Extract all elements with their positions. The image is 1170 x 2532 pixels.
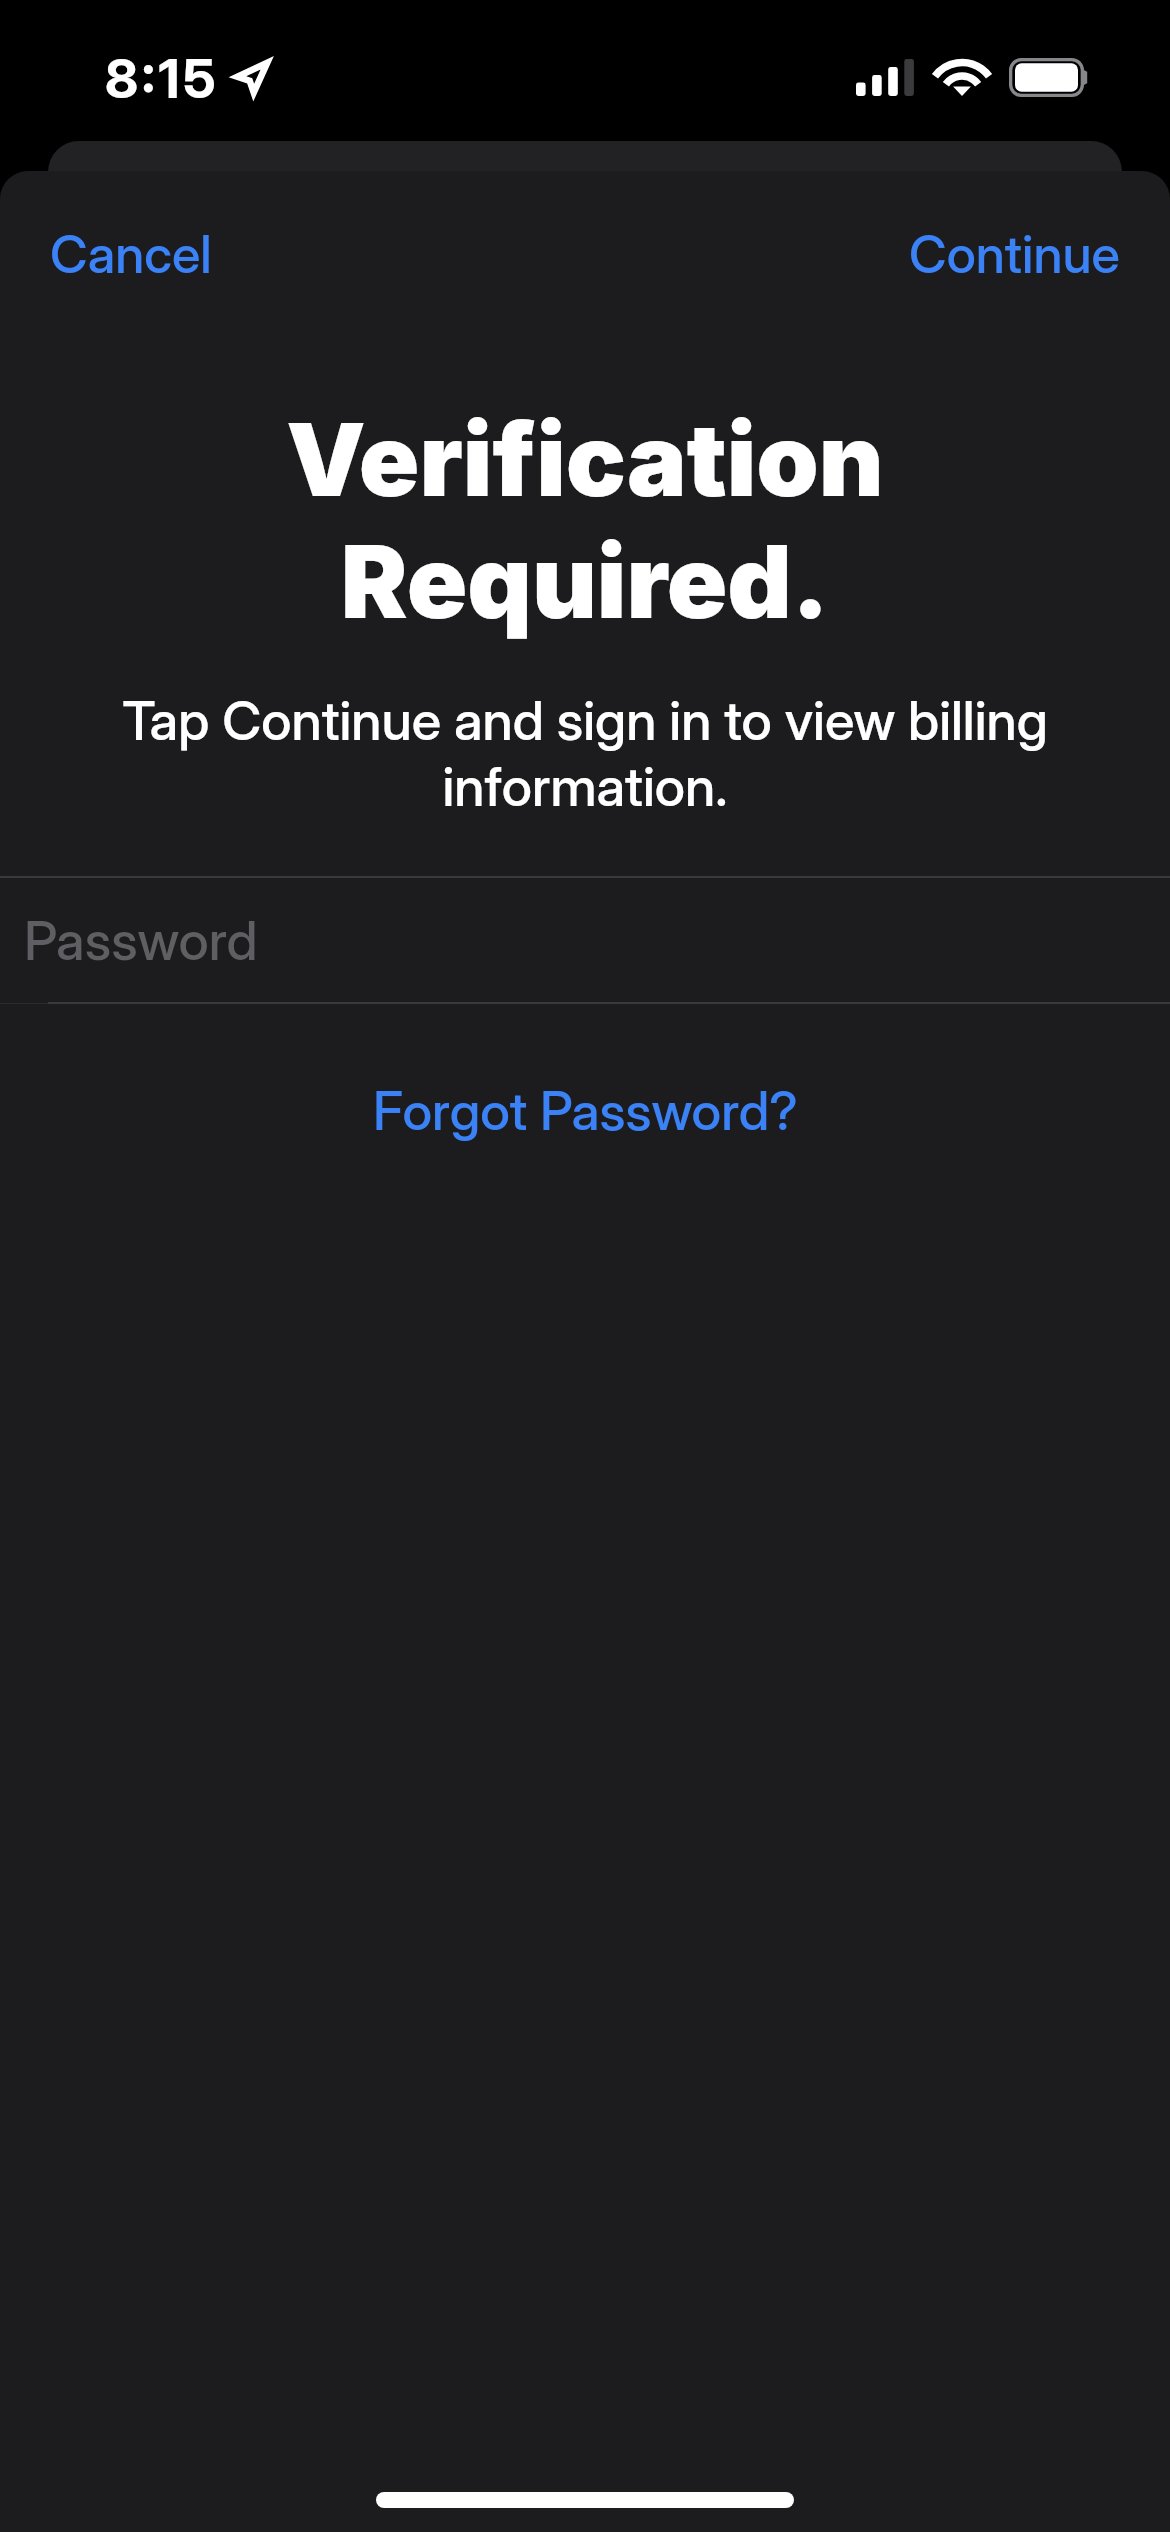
button[interactable]: Password bbox=[0, 878, 1170, 1002]
staticText: Forgot Password? bbox=[373, 1079, 798, 1143]
staticText: Cancel bbox=[50, 223, 212, 286]
button[interactable]: Forgot Password? bbox=[0, 1074, 1170, 1148]
staticText: Tap Continue and sign in to view billing… bbox=[100, 688, 1070, 819]
staticText: Continue bbox=[909, 223, 1120, 286]
staticText: 8:15 bbox=[105, 46, 220, 111]
staticText: Password bbox=[24, 908, 258, 973]
other: Location services active bbox=[230, 58, 272, 100]
other: Cellular signal bbox=[856, 58, 914, 96]
staticText: Verification Required. bbox=[130, 399, 1040, 643]
button[interactable]: Cancel bbox=[0, 171, 252, 337]
button[interactable]: Continue bbox=[869, 171, 1170, 337]
other: Battery full bbox=[1009, 58, 1091, 97]
other: Wi-Fi bbox=[936, 58, 988, 96]
